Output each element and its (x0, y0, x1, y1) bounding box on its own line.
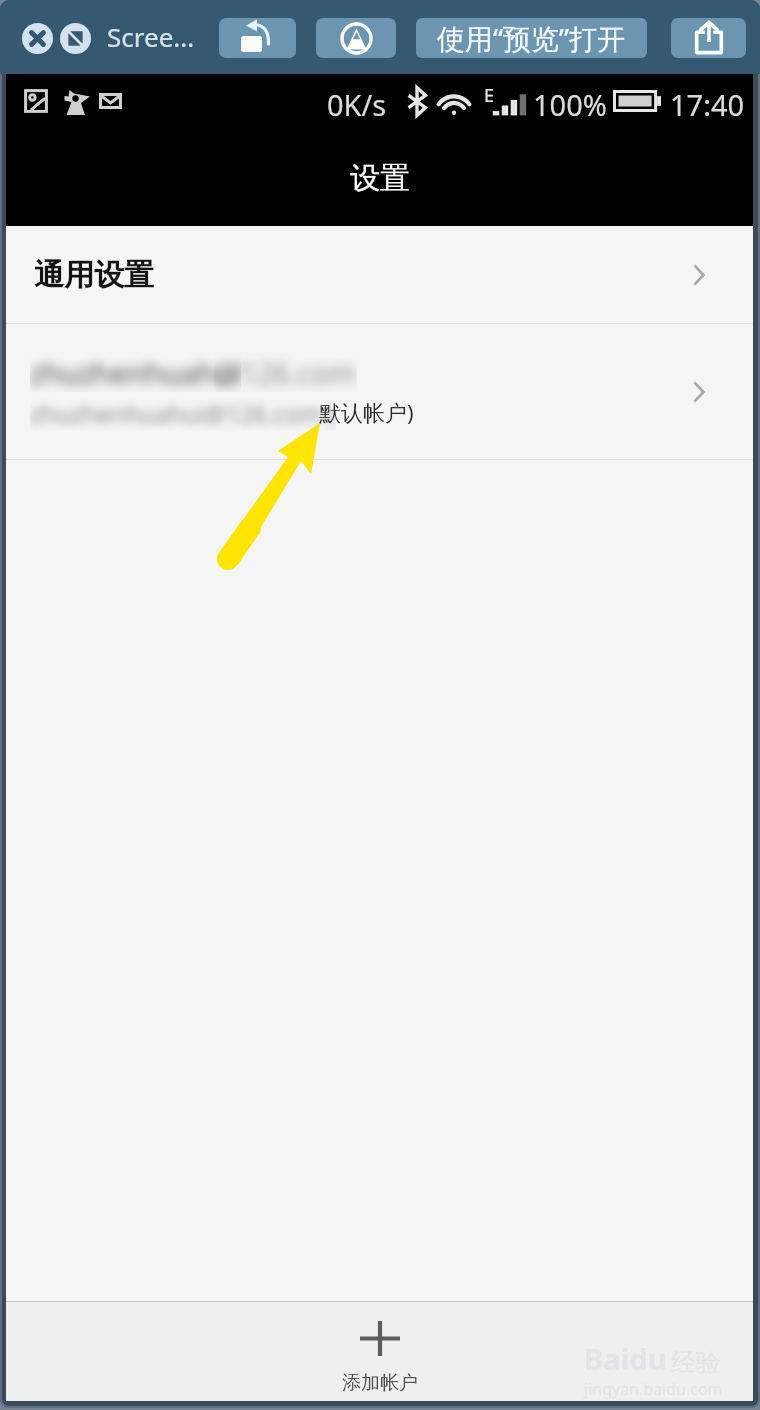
staticText: 设置 (350, 159, 410, 197)
staticText: 添加帐户 (342, 1371, 418, 1395)
staticText: 100% (533, 85, 607, 124)
button[interactable]: Share (671, 18, 746, 58)
button[interactable]: 添加帐户 (6, 1301, 753, 1401)
button[interactable]: 使用“预览”打开 (416, 18, 647, 58)
staticText: 通用设置 (34, 256, 154, 294)
staticText: zhuzhenhuahui@126.com ( (30, 397, 336, 430)
button[interactable]: Close (22, 23, 53, 54)
staticText: 使用“预览”打开 (437, 19, 626, 57)
button[interactable]: Stop screen recording (60, 23, 91, 54)
staticText: 经验 (671, 1347, 721, 1378)
staticText: 0K/s (327, 85, 387, 124)
staticText: zhuzhenhuahui (30, 353, 241, 392)
staticText: E (484, 83, 495, 108)
staticText: Scree... (107, 19, 195, 54)
button[interactable]: Markup (316, 18, 396, 58)
button[interactable]: zhuzhenhuahui (6, 324, 753, 460)
staticText: @126.com (214, 353, 357, 392)
staticText: 17:40 (670, 85, 745, 124)
button[interactable]: Rotate left (219, 18, 296, 58)
staticText: Baidu (584, 1339, 667, 1378)
staticText: jingyan.baidu.com (584, 1378, 723, 1400)
button[interactable]: 通用设置 (6, 226, 753, 324)
staticText: 默认帐户) (319, 397, 414, 427)
